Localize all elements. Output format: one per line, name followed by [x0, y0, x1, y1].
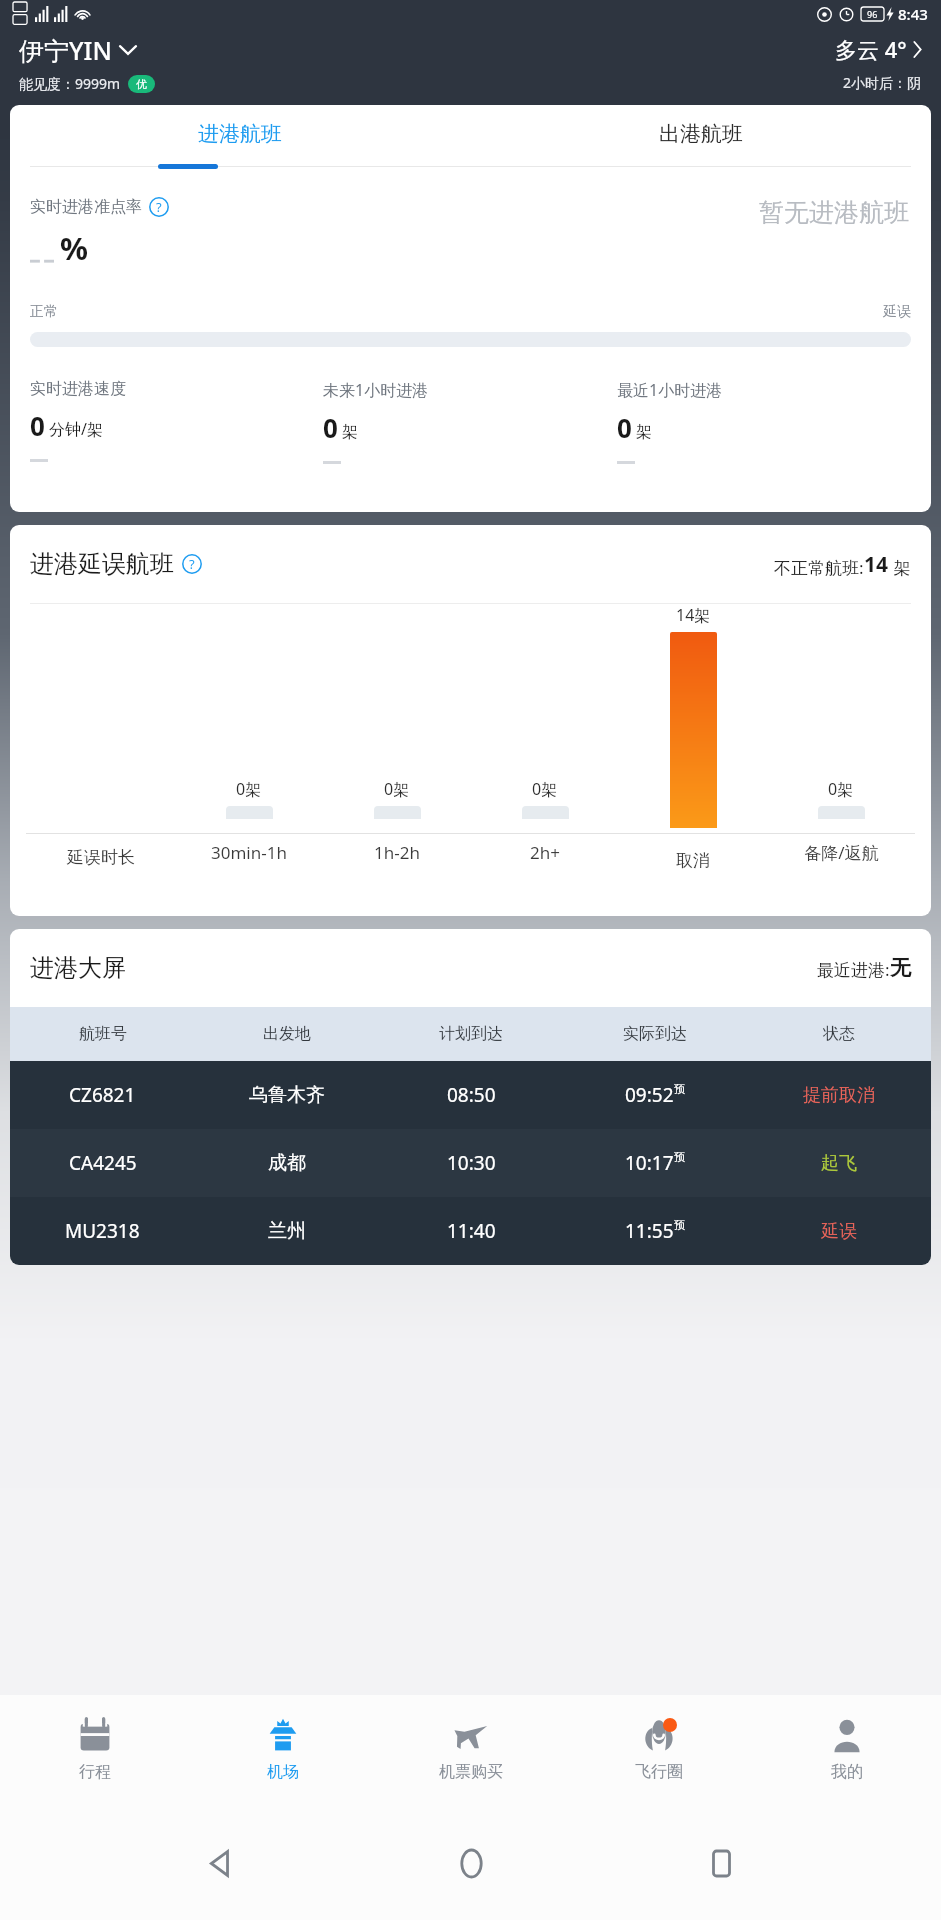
staticText: 11:40 [447, 1218, 496, 1244]
button[interactable]: 飞行圈 [565, 1695, 753, 1805]
staticText: 0架 [828, 778, 854, 800]
button[interactable]: 机票购买 [377, 1695, 565, 1805]
staticText: 09:52 [625, 1082, 674, 1108]
button[interactable]: 行程 [0, 1695, 189, 1805]
button[interactable]: 我的 [753, 1695, 941, 1805]
staticText: 预 [674, 1218, 685, 1232]
staticText: 出发地 [263, 1024, 311, 1044]
staticText: 提前取消 [803, 1084, 875, 1107]
staticText: 乌鲁木齐 [249, 1083, 325, 1107]
staticText: 进港航班 [198, 121, 282, 147]
staticText: 能见度：9999m [19, 74, 121, 93]
staticText: 架 [342, 422, 358, 442]
staticText: 预 [674, 1150, 685, 1164]
staticText: 机场 [267, 1762, 299, 1782]
staticText: 飞行圈 [635, 1762, 683, 1782]
staticText: 伊宁YIN [19, 33, 112, 67]
staticText: 架 [636, 422, 652, 442]
staticText: 未来1小时进港 [323, 379, 429, 401]
button[interactable]: 伊宁YIN [19, 33, 835, 93]
staticText: 计划到达 [439, 1024, 503, 1044]
staticText: 机票购买 [439, 1762, 503, 1782]
button[interactable]: 出港航班 [470, 105, 931, 163]
staticText: 出港航班 [659, 121, 743, 147]
staticText: 我的 [831, 1762, 863, 1782]
staticText: 14 [864, 550, 889, 579]
staticText: 备降/返航 [804, 841, 879, 864]
button[interactable]: MU2318 [10, 1197, 931, 1265]
button[interactable]: 机场 [189, 1695, 377, 1805]
button[interactable]: CA4245 [10, 1129, 931, 1197]
staticText: % [60, 227, 88, 269]
button[interactable]: Recents [691, 1833, 751, 1893]
staticText: 2h+ [530, 841, 560, 864]
staticText: 2小时后：阴 [843, 73, 922, 92]
staticText: 进港延误航班 [30, 549, 174, 579]
staticText: 取消 [676, 850, 710, 871]
button[interactable]: Home [441, 1833, 501, 1893]
staticText: 96 [867, 8, 878, 20]
staticText: 航班号 [79, 1024, 127, 1044]
staticText: 实际到达 [623, 1024, 687, 1044]
staticText: 成都 [268, 1151, 306, 1175]
staticText: 架 [889, 556, 911, 579]
staticText: CZ6821 [69, 1082, 136, 1108]
staticText: 多云 4° [835, 34, 907, 64]
staticText: 30min-1h [211, 841, 287, 864]
staticText: 0 [323, 410, 338, 445]
staticText: 08:50 [447, 1082, 496, 1108]
staticText: 起飞 [821, 1152, 857, 1175]
staticText: 最近进港: [817, 958, 890, 981]
staticText: 实时进港速度 [30, 379, 126, 399]
staticText: 状态 [823, 1024, 855, 1044]
staticText: 0架 [236, 778, 262, 800]
staticText: ? [156, 198, 162, 216]
staticText: 行程 [79, 1762, 111, 1782]
staticText: 0架 [384, 778, 410, 800]
staticText: 正常 [30, 303, 58, 321]
staticText: 延误 [883, 303, 911, 321]
button[interactable]: 进港航班 [10, 105, 470, 163]
staticText: 0 [30, 408, 45, 443]
staticText: CA4245 [69, 1150, 137, 1176]
staticText: 无 [890, 955, 911, 981]
staticText: 进港大屏 [30, 953, 126, 983]
staticText: 兰州 [268, 1219, 306, 1243]
staticText: 延误时长 [67, 847, 135, 868]
staticText: 0 [617, 410, 632, 445]
staticText: 10:30 [447, 1150, 496, 1176]
staticText: 实时进港准点率 [30, 197, 142, 217]
button[interactable]: Back [190, 1833, 250, 1893]
staticText: 1h-2h [374, 841, 420, 864]
staticText: 延误 [821, 1220, 857, 1243]
staticText: 最近1小时进港 [617, 379, 723, 401]
staticText: 暂无进港航班 [759, 197, 909, 228]
staticText: MU2318 [65, 1218, 140, 1244]
staticText: 分钟/架 [49, 418, 103, 440]
button[interactable]: 多云 4° [835, 34, 922, 92]
button[interactable]: CZ6821 [10, 1061, 931, 1129]
staticText: 10:17 [625, 1150, 674, 1176]
staticText: 0架 [532, 778, 558, 800]
staticText: 预 [674, 1082, 685, 1096]
staticText: 14架 [676, 604, 711, 626]
staticText: ? [189, 555, 195, 573]
staticText: 优 [136, 77, 147, 91]
staticText: 8:43 [898, 4, 928, 24]
staticText: 11:55 [625, 1218, 674, 1244]
staticText: 不正常航班: [774, 556, 864, 579]
